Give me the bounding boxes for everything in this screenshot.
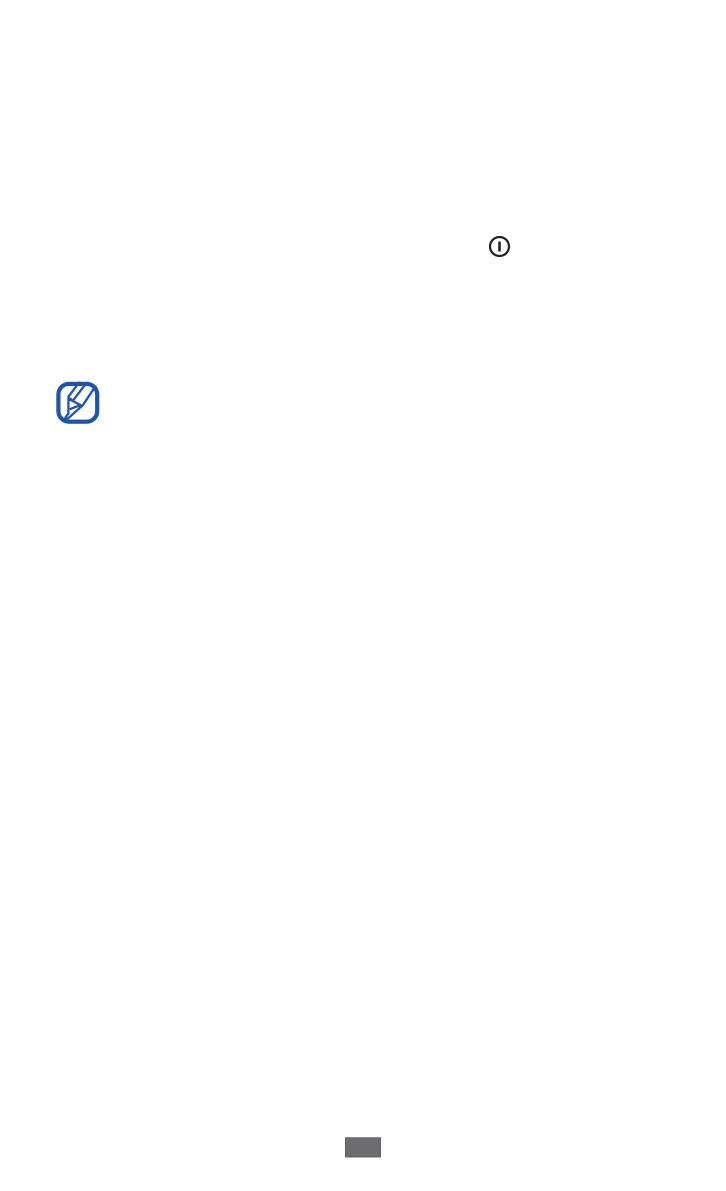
button[interactable]: Note [56,382,99,424]
button[interactable]: Information [489,236,510,257]
